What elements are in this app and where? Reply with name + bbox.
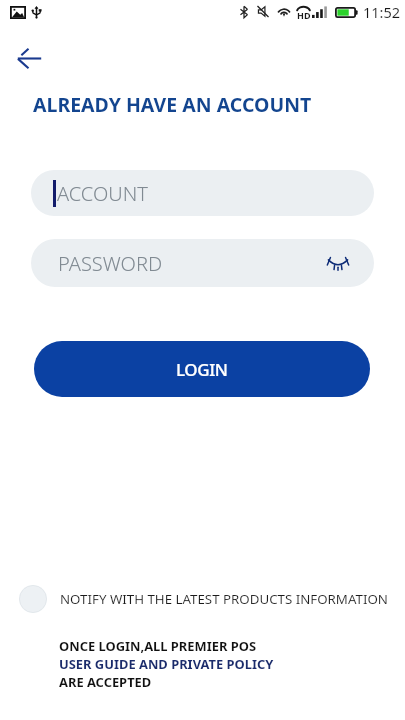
staticText: NOTIFY WITH THE LATEST PRODUCTS INFORMAT… bbox=[60, 590, 388, 608]
staticText: ONCE LOGIN,ALL PREMIER POS bbox=[59, 637, 257, 655]
button[interactable]: Back bbox=[7, 36, 51, 80]
staticText: ARE ACCEPTED bbox=[59, 673, 152, 691]
staticText: ALREADY HAVE AN ACCOUNT bbox=[33, 91, 312, 118]
staticText: HD bbox=[297, 9, 311, 21]
button[interactable]: USER GUIDE AND PRIVATE POLICY bbox=[59, 655, 274, 673]
staticText: LOGIN bbox=[176, 358, 228, 381]
button[interactable]: Show password bbox=[322, 247, 354, 279]
staticText: 11:52 bbox=[363, 2, 401, 22]
button[interactable]: PASSWORD bbox=[31, 239, 374, 287]
staticText: PASSWORD bbox=[58, 250, 163, 277]
staticText: ACCOUNT bbox=[57, 180, 148, 207]
button[interactable]: ACCOUNT bbox=[31, 170, 374, 216]
button[interactable]: NOTIFY WITH THE LATEST PRODUCTS INFORMAT… bbox=[19, 583, 388, 615]
button[interactable]: LOGIN bbox=[34, 341, 370, 397]
